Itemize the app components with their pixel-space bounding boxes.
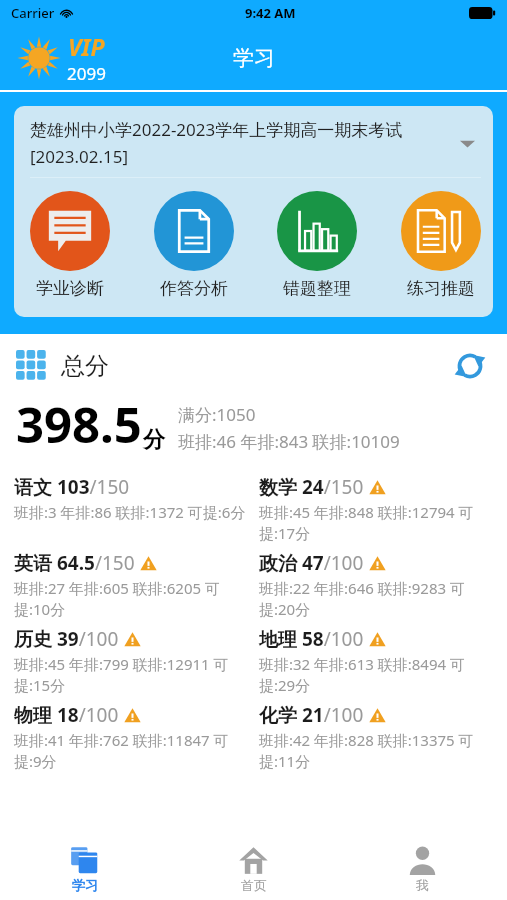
staticText: 历史 39/100 [14,626,119,652]
button[interactable]: 我 [338,838,507,900]
staticText: 物理 18/100 [14,702,119,728]
staticText: 首页 [241,877,267,893]
button[interactable]: 错题整理 [277,191,357,299]
staticText: 我 [416,877,429,893]
staticText: 学习 [72,877,98,893]
button[interactable]: 语文 103/150 [14,472,247,526]
button[interactable]: 地理 58/100 [259,624,493,700]
staticText: 政治 47/100 [259,550,364,576]
button[interactable]: 物理 18/100 [14,700,247,776]
button[interactable]: 英语 64.5/150 [14,548,247,624]
other: VIP level [16,35,62,81]
button[interactable]: 作答分析 [154,191,234,299]
staticText: 错题整理 [283,278,351,299]
button[interactable]: 学业诊断 [30,191,110,299]
button[interactable]: 政治 47/100 [259,548,493,624]
staticText: 学习 [233,45,275,71]
staticText: 班排:46 年排:843 联排:10109 [178,430,400,453]
staticText: 2099 [67,62,106,85]
staticText: 英语 64.5/150 [14,550,135,576]
staticText: 学业诊断 [36,278,104,299]
staticText: 分 [143,426,165,454]
button[interactable]: 学习 [0,838,169,900]
button[interactable]: Select exam [453,129,481,157]
staticText: 班排:27 年排:605 联排:6205 可提:10分 [14,578,247,620]
staticText: 满分:1050 [178,403,256,426]
staticText: 班排:45 年排:799 联排:12911 可提:15分 [14,654,247,696]
staticText: 班排:45 年排:848 联排:12794 可提:17分 [259,502,493,544]
staticText: 总分 [61,351,109,381]
staticText: 数学 24/150 [259,474,364,500]
staticText: 班排:42 年排:828 联排:13375 可提:11分 [259,730,493,772]
staticText: 9:42 AM [245,4,296,22]
button[interactable]: 历史 39/100 [14,624,247,700]
staticText: 398.5 [16,391,142,458]
staticText: 练习推题 [407,278,475,299]
staticText: VIP [68,31,105,62]
button[interactable]: 数学 24/150 [259,472,493,548]
staticText: 化学 21/100 [259,702,364,728]
button[interactable]: Refresh [449,345,491,387]
button[interactable]: 化学 21/100 [259,700,493,776]
staticText: 班排:41 年排:762 联排:11847 可提:9分 [14,730,247,772]
staticText: 班排:3 年排:86 联排:1372 可提:6分 [14,502,246,522]
staticText: 楚雄州中小学2022-2023学年上学期高一期末考试[2023.02.15] [30,118,447,168]
staticText: Carrier [11,4,55,22]
staticText: 语文 103/150 [14,474,130,500]
button[interactable]: 练习推题 [401,191,481,299]
staticText: 地理 58/100 [259,626,364,652]
staticText: 班排:32 年排:613 联排:8494 可提:29分 [259,654,493,696]
button[interactable]: 首页 [169,838,338,900]
staticText: 班排:22 年排:646 联排:9283 可提:20分 [259,578,493,620]
staticText: 作答分析 [160,278,228,299]
button[interactable]: VIP level [12,27,110,89]
